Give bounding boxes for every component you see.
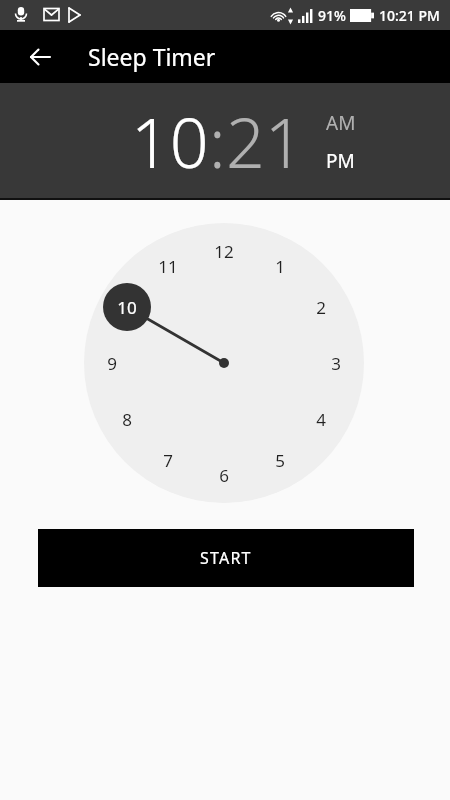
staticText: 4	[316, 408, 326, 431]
button[interactable]: 4	[301, 405, 341, 433]
button[interactable]: 5	[260, 446, 300, 474]
button[interactable]: 1	[260, 252, 300, 280]
staticText: START	[200, 547, 252, 569]
staticText: Sleep Timer	[88, 41, 216, 72]
staticText: 1	[275, 255, 285, 278]
staticText: 3	[331, 352, 341, 375]
button[interactable]: 8	[107, 405, 147, 433]
staticText: 10:21 PM	[379, 6, 440, 25]
staticText: 91%	[318, 6, 346, 25]
staticText: 10	[117, 296, 137, 319]
staticText: 11	[158, 255, 178, 278]
button[interactable]: 10	[131, 95, 209, 188]
button[interactable]: Back	[16, 33, 64, 81]
button[interactable]: 9	[92, 349, 132, 377]
staticText: 6	[219, 464, 229, 487]
button[interactable]: 2	[301, 293, 341, 321]
staticText: 5	[275, 449, 285, 472]
button[interactable]: PM	[326, 148, 355, 174]
button[interactable]: AM	[326, 110, 356, 136]
button[interactable]: 7	[148, 446, 188, 474]
staticText: 9	[107, 352, 117, 375]
button[interactable]: START	[38, 529, 414, 587]
staticText: 2	[316, 296, 326, 319]
staticText: 8	[122, 408, 132, 431]
staticText: 7	[163, 449, 173, 472]
staticText: 12	[214, 240, 234, 263]
button[interactable]: 12	[204, 237, 244, 265]
button[interactable]: 3	[316, 349, 356, 377]
staticText: :	[209, 95, 226, 188]
button[interactable]: 10	[107, 293, 147, 321]
button[interactable]: 6	[204, 461, 244, 489]
button[interactable]: 21	[226, 95, 304, 188]
button[interactable]: 11	[148, 252, 188, 280]
